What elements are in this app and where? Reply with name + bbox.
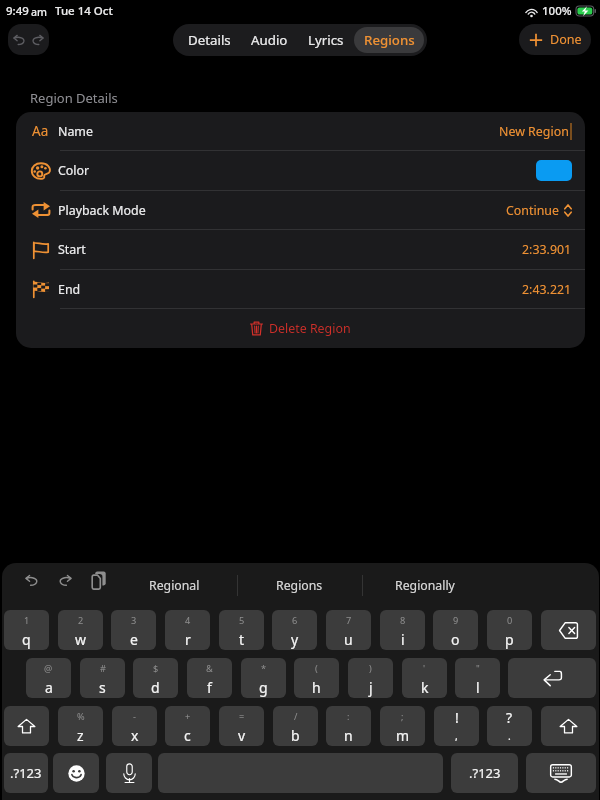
button[interactable]: Aa — [16, 112, 585, 150]
button[interactable]: Regions — [237, 563, 362, 608]
staticText: 9:49 — [6, 3, 29, 19]
staticText: : — [347, 710, 350, 723]
staticText: 100% — [542, 3, 572, 19]
staticText: z — [77, 726, 84, 745]
staticText: 7 — [346, 614, 352, 627]
button[interactable]: $ — [133, 658, 178, 698]
staticText: u — [344, 630, 353, 649]
button[interactable]: / — [273, 706, 318, 746]
button[interactable]: Color — [16, 151, 585, 190]
button[interactable]: Done — [519, 24, 591, 55]
staticText: t — [239, 630, 245, 649]
staticText: 1 — [24, 614, 30, 627]
button[interactable]: 2 — [58, 610, 103, 650]
button[interactable]: % — [58, 706, 103, 746]
staticText: $ — [153, 662, 159, 675]
staticText: ( — [315, 662, 318, 675]
staticText: n — [344, 726, 353, 745]
button[interactable]: : — [326, 706, 371, 746]
button[interactable]: Regional — [112, 563, 237, 608]
button[interactable]: - — [112, 706, 157, 746]
button[interactable]: .?123 — [4, 753, 48, 793]
button[interactable]: Redo — [58, 573, 73, 588]
button[interactable]: Details — [176, 27, 242, 53]
button[interactable]: = — [219, 706, 264, 746]
staticText: 2 — [78, 614, 84, 627]
button[interactable]: # — [80, 658, 125, 698]
staticText: Playback Mode — [58, 202, 146, 219]
staticText: Done — [550, 31, 582, 48]
staticText: 8 — [400, 614, 406, 627]
staticText: End — [58, 281, 81, 298]
button[interactable]: 8 — [380, 610, 425, 650]
button[interactable]: ; — [380, 706, 425, 746]
other: Redo — [31, 33, 45, 47]
staticText: 2:33.901 — [522, 241, 572, 258]
button[interactable]: ? — [487, 706, 532, 746]
staticText: & — [206, 662, 213, 675]
staticText: l — [476, 678, 480, 697]
button[interactable]: 5 — [219, 610, 264, 650]
button[interactable]: Lyrics — [297, 27, 354, 53]
button[interactable]: Audio — [242, 27, 297, 53]
button[interactable]: + — [165, 706, 210, 746]
staticText: w — [75, 630, 87, 649]
staticText: 2:43.221 — [522, 281, 572, 298]
staticText: Regionally — [395, 577, 455, 594]
button[interactable]: Shift — [541, 706, 596, 746]
button[interactable]: Start — [16, 230, 585, 269]
button[interactable]: Undo — [24, 573, 39, 588]
button[interactable]: Return — [508, 658, 596, 698]
button[interactable]: & — [187, 658, 232, 698]
staticText: q — [22, 630, 31, 649]
button[interactable]: 7 — [326, 610, 371, 650]
button[interactable]: 0 — [487, 610, 532, 650]
staticText: ; — [401, 710, 404, 723]
button[interactable]: Undo — [8, 24, 49, 55]
staticText: ) — [369, 662, 372, 675]
staticText: p — [505, 630, 514, 649]
button[interactable]: ) — [348, 658, 393, 698]
button[interactable]: Paste — [91, 571, 106, 590]
button[interactable]: 6 — [272, 610, 317, 650]
button[interactable]: Backspace — [541, 610, 596, 650]
staticText: % — [77, 710, 85, 723]
button[interactable]: Regionally — [362, 563, 487, 608]
button[interactable]: Emoji — [53, 753, 99, 793]
button[interactable]: 9 — [433, 610, 478, 650]
staticText: New Region — [499, 123, 569, 140]
button[interactable]: @ — [26, 658, 71, 698]
staticText: 4 — [185, 614, 191, 627]
button[interactable]: Shift — [4, 706, 49, 746]
staticText: Region Details — [30, 89, 118, 107]
button[interactable]: End — [16, 270, 585, 308]
button[interactable]: 1 — [4, 610, 49, 650]
button[interactable]: .?123 — [451, 753, 518, 793]
button[interactable]: Playback Mode — [16, 191, 585, 229]
staticText: ? — [506, 708, 513, 727]
button[interactable]: * — [241, 658, 286, 698]
staticText: f — [207, 678, 212, 697]
staticText: Regions — [276, 577, 323, 594]
button[interactable]: ' — [402, 658, 447, 698]
staticText: r — [185, 630, 191, 649]
button[interactable]: " — [455, 658, 500, 698]
button[interactable]: 4 — [165, 610, 210, 650]
button[interactable]: Regions — [354, 27, 424, 53]
staticText: m — [396, 726, 410, 745]
staticText: y — [291, 630, 299, 649]
staticText: + — [185, 710, 191, 723]
button[interactable]: ! — [434, 706, 479, 746]
staticText: Continue — [506, 202, 559, 219]
staticText: h — [312, 678, 321, 697]
button[interactable]: 3 — [111, 610, 156, 650]
staticText: Color — [58, 162, 90, 179]
staticText: s — [99, 678, 106, 697]
staticText: 5 — [239, 614, 245, 627]
staticText: * — [261, 662, 267, 675]
button[interactable]: Hide keyboard — [526, 753, 596, 793]
button[interactable]: Dictate — [106, 753, 152, 793]
button[interactable]: ( — [294, 658, 339, 698]
button[interactable]: Delete Region — [16, 309, 585, 347]
